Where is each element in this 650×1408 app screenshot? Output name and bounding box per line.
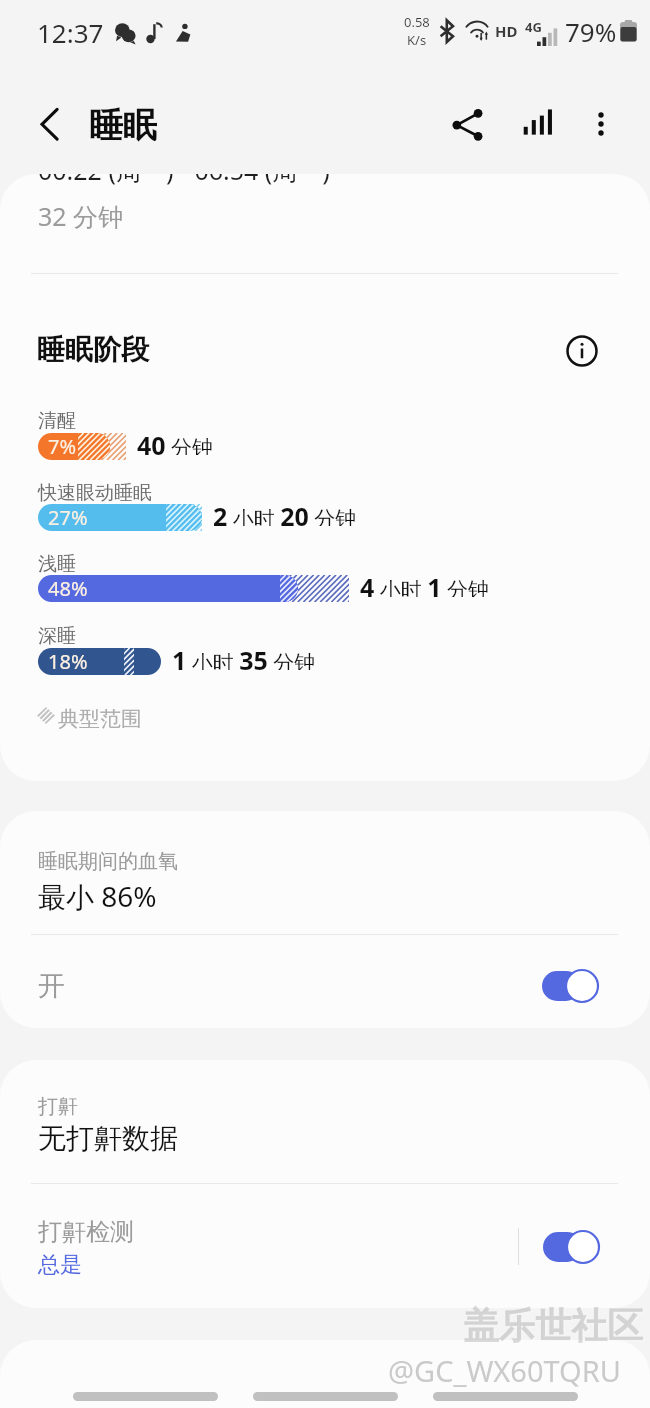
button[interactable]: Share [440,96,496,152]
staticText: 盖乐世社区 [463,1303,643,1348]
staticText: 1 小时 35 分钟 [172,643,316,670]
staticText: 2 小时 20 分钟 [213,499,357,526]
staticText: 深睡 [38,624,76,648]
staticText: 18% [48,648,88,675]
staticText: 27% [48,504,88,531]
button[interactable]: Charts [510,96,566,152]
staticText: 盖乐世社区 [465,1305,645,1350]
button[interactable]: 开 [38,943,599,1028]
staticText: HD [495,21,518,41]
staticText: 睡眠期间的血氧 [38,849,178,874]
staticText: 最小 86% [38,877,157,915]
staticText: 快速眼动睡眠 [38,481,152,505]
staticText: 开 [38,969,65,1003]
button[interactable]: 打鼾检测 [38,1205,600,1308]
staticText: 浅睡 [38,552,76,576]
staticText: 40 分钟 [137,428,214,455]
staticText: 无打鼾数据 [38,1121,178,1156]
staticText: 7% [48,433,77,460]
button[interactable]: More options [573,96,629,152]
staticText: 睡眠 [89,104,157,147]
staticText: 12:37 [37,15,104,50]
staticText: @GC_WX60TQRU [388,1351,621,1390]
staticText: 打鼾 [38,1094,78,1119]
staticText: K/s [407,31,427,49]
staticText: 打鼾检测 [38,1217,134,1247]
staticText: 典型范围 [58,706,142,732]
staticText: 4G [525,18,542,36]
staticText: 32 分钟 [38,199,124,233]
staticText: 总是 [38,1251,82,1279]
staticText: 4 小时 1 分钟 [360,570,489,597]
staticText: 48% [48,575,88,602]
staticText: @GC_WX60TQRU [390,1353,623,1392]
button[interactable]: Back [21,96,77,152]
staticText: 79% [565,14,617,49]
staticText: 0.58 [404,13,430,31]
staticText: 00:22 (周一) - 06:54 (周一) [38,174,330,187]
staticText: 睡眠阶段 [37,332,149,367]
staticText: 清醒 [38,409,76,433]
button[interactable]: Info [557,326,607,376]
